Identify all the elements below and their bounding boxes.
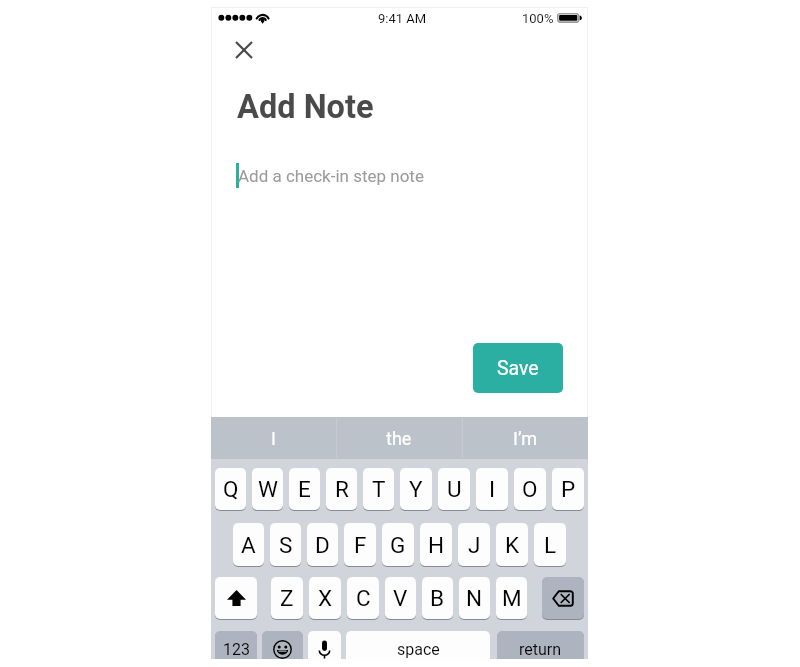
staticText: 123 — [223, 640, 250, 659]
button[interactable]: I’m — [462, 417, 588, 459]
staticText: 100% — [522, 11, 554, 26]
staticText: Z — [280, 585, 294, 611]
button[interactable]: L — [534, 523, 566, 566]
button[interactable]: the — [336, 417, 462, 459]
staticText: C — [356, 585, 371, 611]
staticText: I’m — [513, 428, 538, 449]
button[interactable]: 123 — [215, 631, 257, 659]
button[interactable]: X — [309, 577, 341, 619]
staticText: the — [386, 428, 412, 449]
staticText: R — [335, 476, 349, 502]
button[interactable]: T — [363, 468, 394, 510]
button[interactable]: W — [252, 468, 283, 510]
button[interactable]: M — [496, 577, 527, 619]
button[interactable]: Z — [271, 577, 303, 619]
button[interactable]: Close — [228, 34, 260, 66]
button[interactable]: A — [233, 523, 264, 566]
button[interactable]: O — [514, 468, 546, 510]
button[interactable]: space — [346, 631, 490, 659]
staticText: N — [466, 585, 483, 611]
staticText: M — [502, 585, 522, 611]
button[interactable]: D — [307, 523, 338, 566]
button[interactable]: Backspace — [542, 577, 584, 619]
staticText: S — [279, 532, 293, 558]
staticText: O — [522, 476, 538, 502]
staticText: 9:41 AM — [378, 11, 427, 26]
staticText: T — [372, 476, 386, 502]
button[interactable]: F — [344, 523, 376, 566]
staticText: space — [397, 640, 440, 659]
staticText: I — [271, 428, 276, 449]
button[interactable]: B — [422, 577, 453, 619]
button[interactable]: V — [385, 577, 416, 619]
button[interactable]: I — [476, 468, 508, 510]
staticText: Save — [497, 357, 539, 380]
button[interactable]: I — [211, 417, 336, 459]
staticText: Add Note — [237, 88, 374, 126]
button[interactable]: P — [552, 468, 584, 510]
staticText: Q — [223, 476, 239, 502]
staticText: K — [505, 532, 520, 558]
staticText: J — [468, 532, 481, 558]
button[interactable]: Dictation — [308, 631, 341, 659]
button[interactable]: E — [289, 468, 320, 510]
staticText: H — [428, 532, 445, 558]
staticText: G — [390, 532, 406, 558]
staticText: V — [393, 585, 408, 611]
staticText: P — [561, 476, 576, 502]
staticText: X — [318, 585, 333, 611]
button[interactable]: C — [347, 577, 379, 619]
button[interactable]: Emoji — [262, 631, 303, 659]
staticText: return — [519, 640, 562, 659]
staticText: L — [544, 532, 557, 558]
button[interactable]: return — [497, 631, 584, 659]
staticText: F — [354, 532, 367, 558]
staticText: I — [489, 476, 496, 502]
staticText: Add a check-in step note — [238, 166, 424, 186]
staticText: E — [298, 476, 311, 502]
button[interactable]: R — [326, 468, 357, 510]
button[interactable]: H — [420, 523, 452, 566]
staticText: W — [258, 476, 278, 502]
staticText: Y — [409, 476, 423, 502]
button[interactable]: Q — [215, 468, 246, 510]
staticText: B — [430, 585, 445, 611]
button[interactable]: Shift — [215, 577, 257, 619]
staticText: D — [315, 532, 330, 558]
button[interactable]: N — [459, 577, 490, 619]
button[interactable]: J — [458, 523, 490, 566]
button[interactable]: S — [270, 523, 301, 566]
staticText: U — [447, 476, 462, 502]
staticText: A — [241, 532, 256, 558]
button[interactable]: U — [438, 468, 470, 510]
button[interactable]: Save — [473, 343, 563, 393]
button[interactable]: Y — [400, 468, 432, 510]
button[interactable]: K — [496, 523, 528, 566]
button[interactable]: G — [382, 523, 414, 566]
